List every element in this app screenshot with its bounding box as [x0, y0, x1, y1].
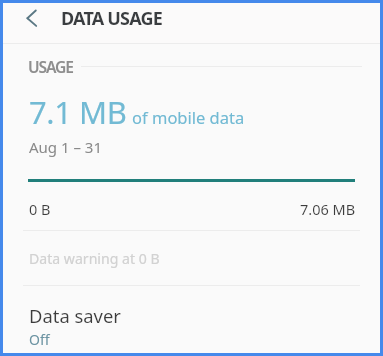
staticText: 0 B: [29, 199, 51, 219]
button[interactable]: Data warning at 0 B: [3, 231, 380, 285]
staticText: DATA USAGE: [61, 6, 163, 31]
staticText: of mobile data: [132, 106, 245, 128]
button[interactable]: Data saver: [3, 286, 380, 352]
staticText: Aug 1 – 31: [29, 137, 103, 157]
staticText: Data warning at 0 B: [29, 249, 160, 268]
staticText: 7.1 MB: [29, 91, 127, 133]
staticText: USAGE: [28, 56, 73, 77]
button[interactable]: 7.1 MB: [3, 72, 380, 230]
staticText: Data saver: [29, 303, 121, 328]
staticText: Off: [29, 330, 50, 349]
button[interactable]: Navigate up: [18, 6, 44, 32]
staticText: 7.06 MB: [300, 199, 356, 219]
